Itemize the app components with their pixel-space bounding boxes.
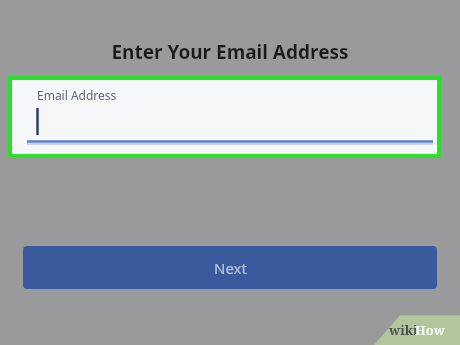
staticText: Next [214,258,247,278]
button[interactable]: Email Address text field [12,80,437,154]
staticText: wiki [389,321,418,339]
staticText: How [415,321,445,339]
staticText: Enter Your Email Address [0,39,460,65]
button[interactable]: Next [23,246,437,289]
staticText: Email Address [37,87,117,103]
